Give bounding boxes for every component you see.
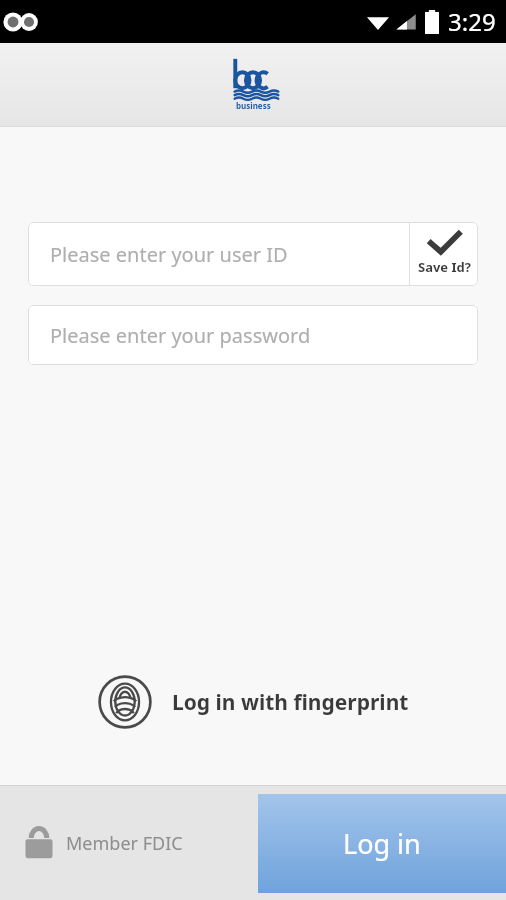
button[interactable]: Save Id [410,222,478,286]
staticText: Save Id? [418,258,471,276]
staticText: Log in [343,825,421,862]
staticText: 3:29 [448,5,496,38]
staticText: Member FDIC [66,831,183,856]
button[interactable]: Log in with fingerprint [0,675,506,729]
staticText: Please enter your password [50,322,311,349]
staticText: Please enter your user ID [50,241,288,268]
button[interactable]: Please enter your user ID [28,222,409,286]
staticText: Log in with fingerprint [172,688,409,717]
button[interactable]: Please enter your password [28,305,478,365]
button[interactable]: Log in [258,794,506,893]
staticText: business [236,100,271,111]
button[interactable]: Member FDIC [24,824,183,862]
